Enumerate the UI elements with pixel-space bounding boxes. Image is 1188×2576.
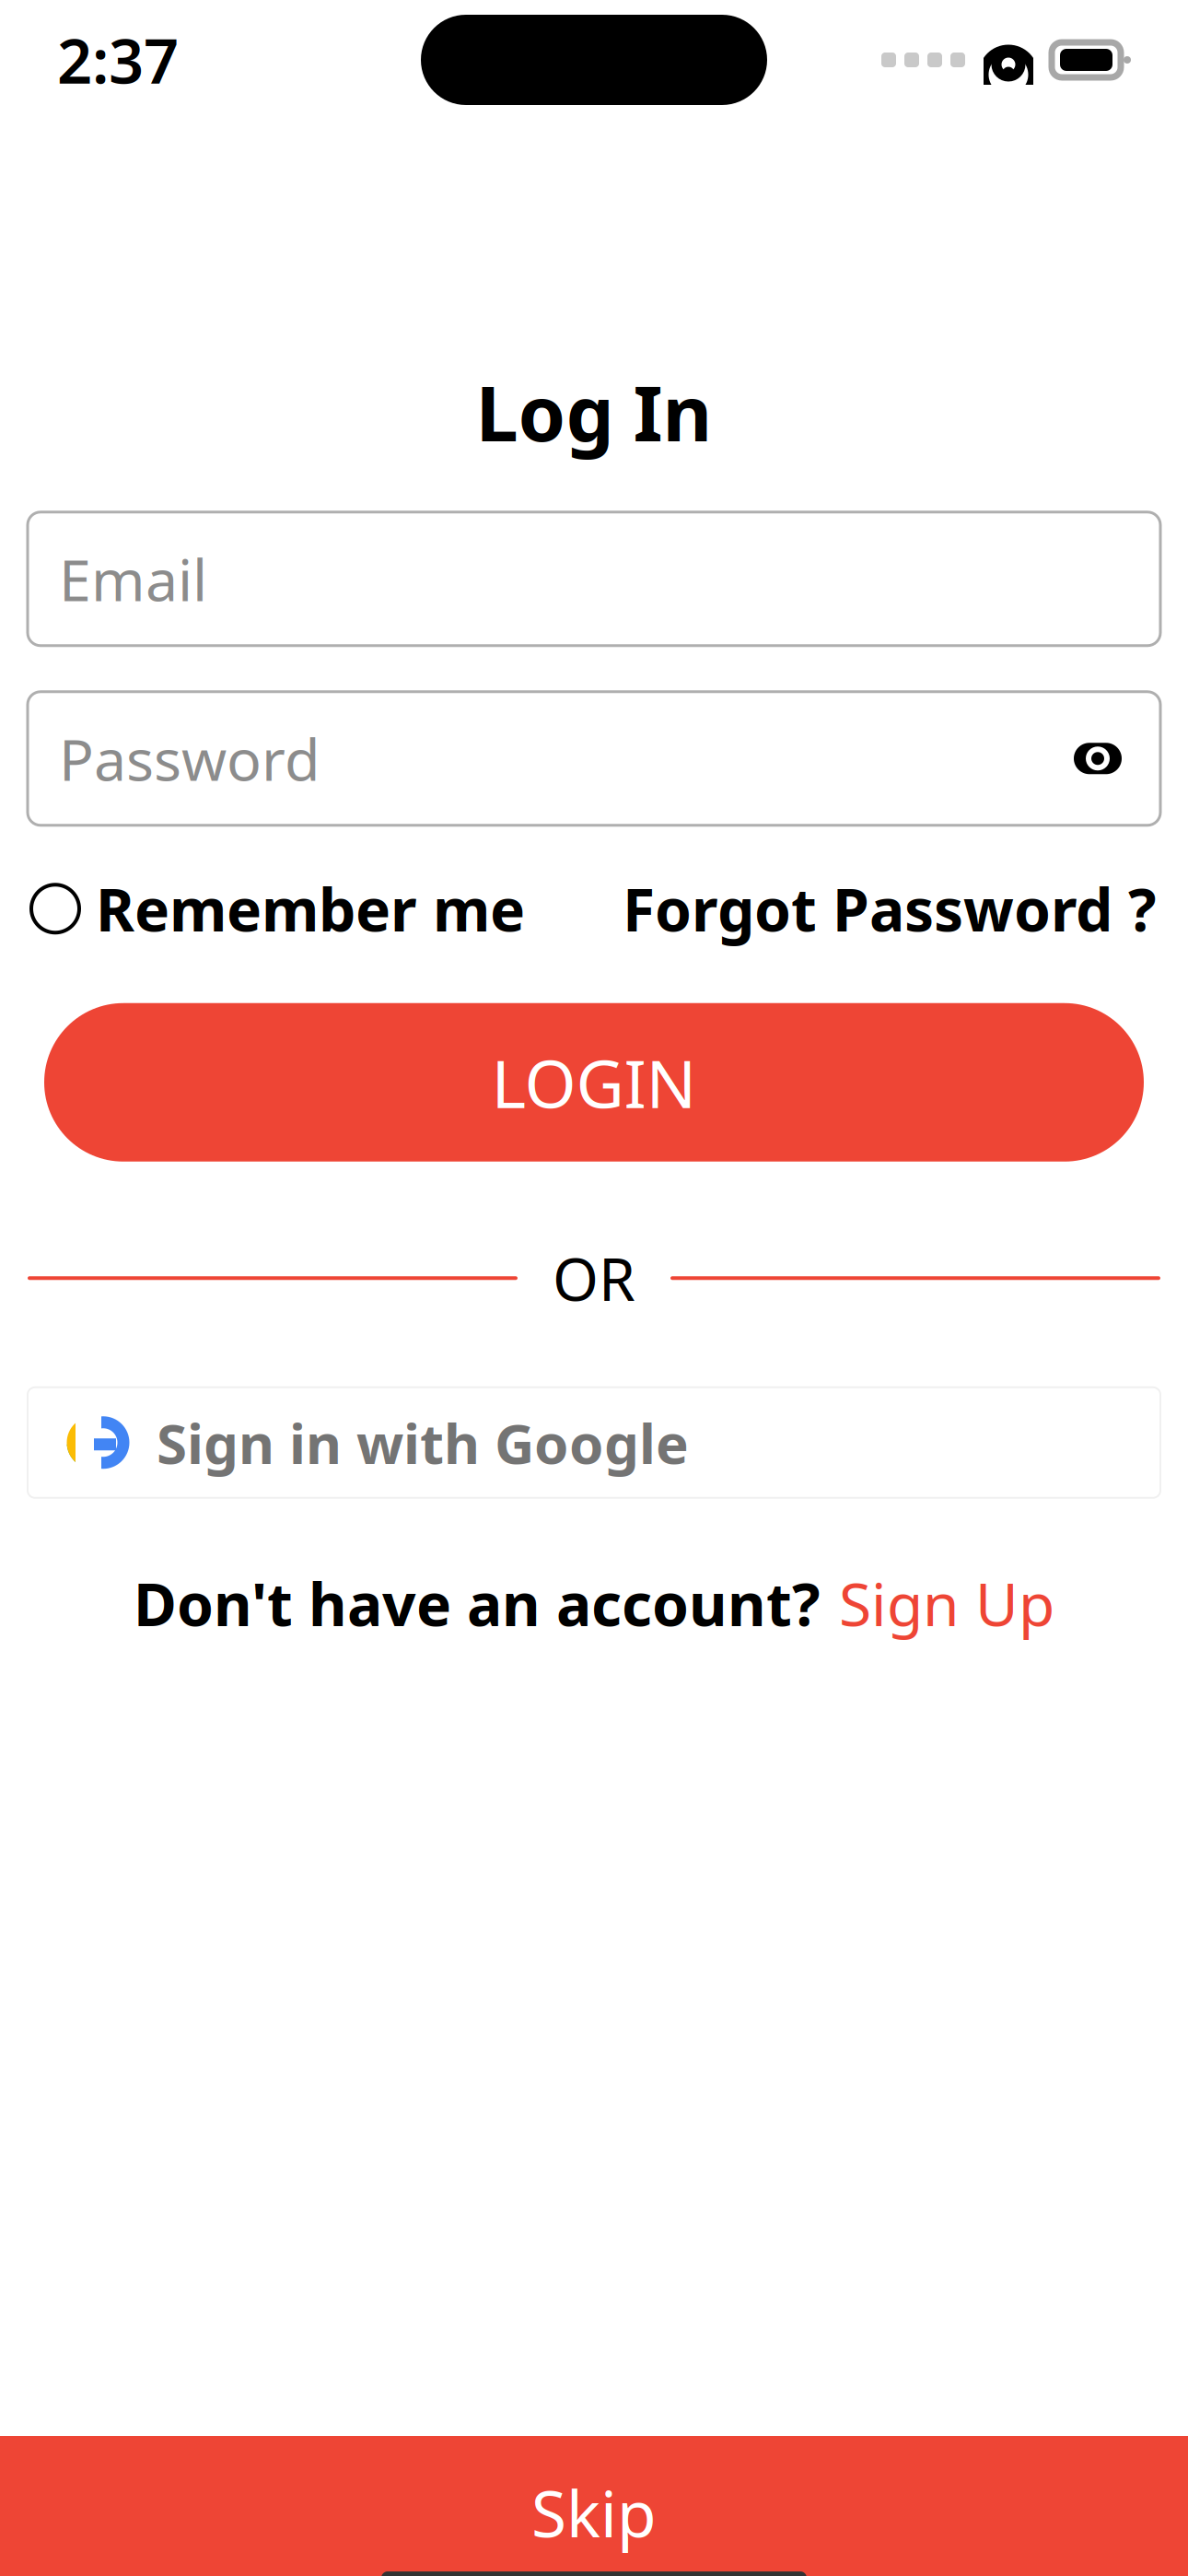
staticText: Email [59, 541, 207, 617]
button[interactable]: Sign Up [821, 1564, 1054, 1643]
staticText: Skip [531, 2470, 657, 2555]
button[interactable]: LOGIN [44, 1003, 1144, 1162]
staticText: Sign Up [839, 1564, 1054, 1643]
button[interactable]: Skip [0, 2436, 1188, 2576]
staticText: Sign in with Google [157, 1406, 689, 1479]
staticText: Forgot Password ? [623, 870, 1157, 948]
button[interactable]: Remember me [31, 870, 525, 948]
staticText: Password [59, 720, 320, 797]
staticText: Log In [476, 361, 712, 462]
staticText: LOGIN [491, 1038, 697, 1126]
button[interactable]: Sign in with Google [28, 1387, 1160, 1498]
staticText: Don't have an account? [134, 1564, 821, 1643]
button[interactable]: Forgot Password ? [623, 870, 1157, 948]
staticText: Remember me [96, 870, 525, 948]
staticText: OR [553, 1239, 635, 1317]
staticText: 2:37 [57, 19, 179, 101]
button[interactable]: Show password [1055, 716, 1140, 801]
